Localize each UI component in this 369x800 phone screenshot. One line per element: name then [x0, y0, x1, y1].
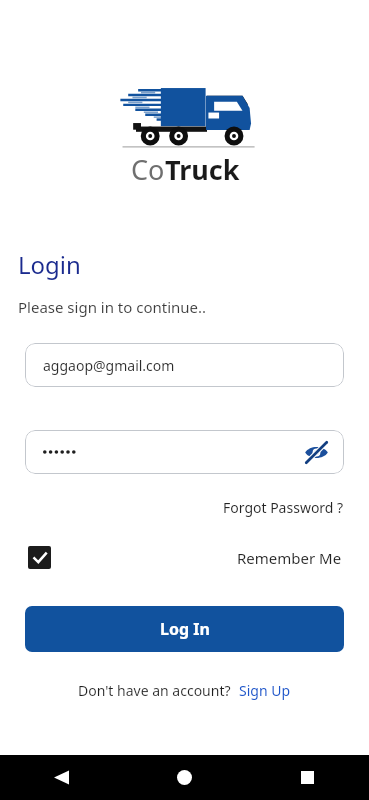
- staticText: Truck: [165, 151, 240, 188]
- staticText: Sign Up: [239, 681, 291, 700]
- staticText: Don't have an account?: [78, 681, 231, 700]
- staticText: Please sign in to continue..: [18, 297, 207, 317]
- button[interactable]: Sign Up: [239, 681, 291, 700]
- staticText: Co: [131, 151, 165, 188]
- staticText: Remember Me: [237, 548, 342, 568]
- staticText: Forgot Password ?: [223, 498, 344, 517]
- staticText: Log In: [160, 618, 210, 640]
- button[interactable]: Hide password: [301, 437, 331, 467]
- button[interactable]: Remember Me: [28, 546, 342, 569]
- button[interactable]: Log In: [25, 606, 344, 652]
- staticText: Login: [18, 248, 81, 281]
- button[interactable]: Recent apps: [246, 755, 369, 800]
- button[interactable]: Back: [0, 755, 123, 800]
- staticText: aggaop@gmail.com: [43, 356, 175, 375]
- button[interactable]: Forgot Password ?: [223, 498, 344, 517]
- button[interactable]: Hide password: [25, 430, 344, 474]
- button[interactable]: Home: [123, 755, 246, 800]
- button[interactable]: aggaop@gmail.com: [25, 343, 344, 387]
